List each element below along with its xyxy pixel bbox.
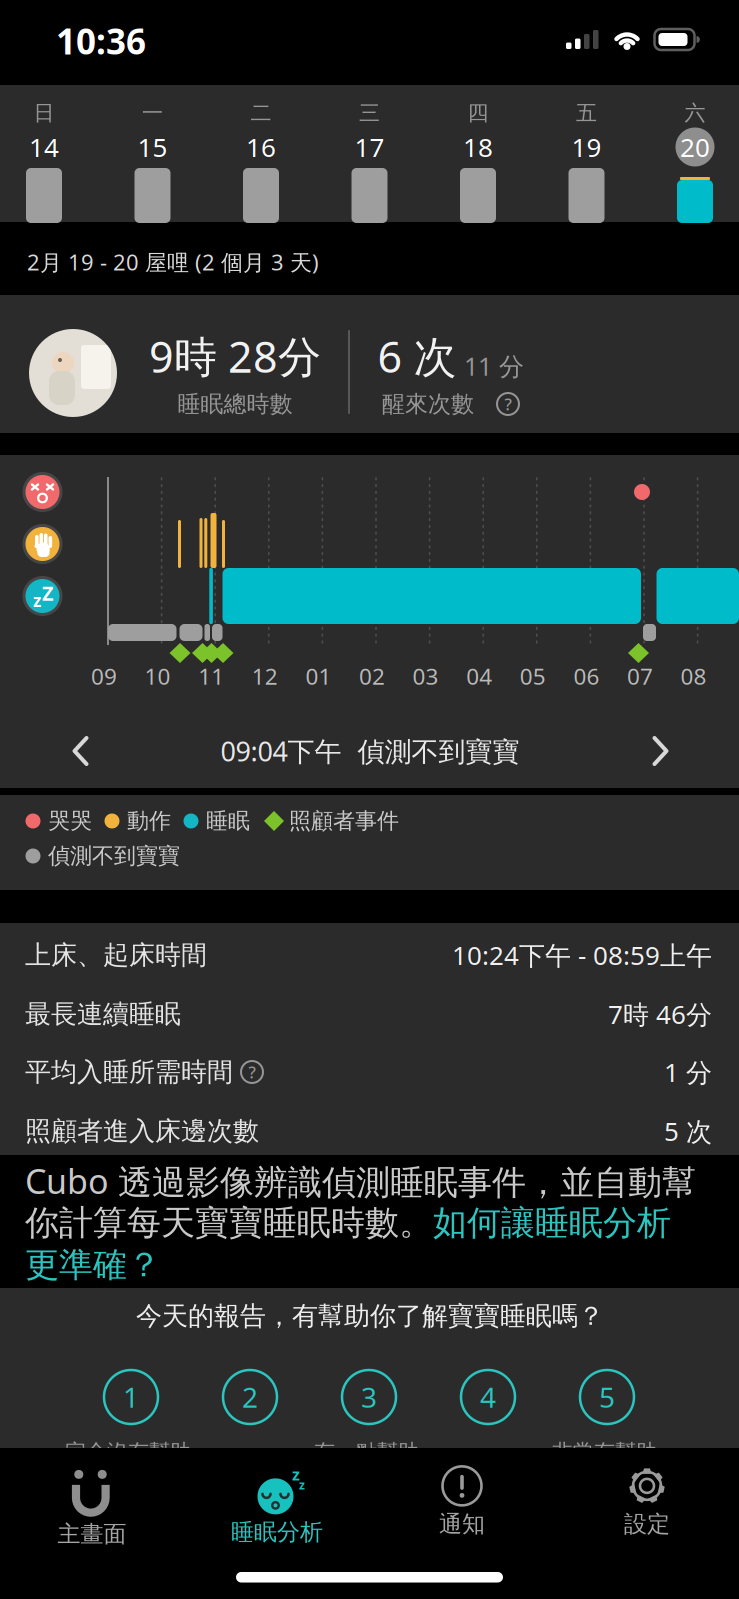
staticText: 二 (250, 100, 271, 126)
button[interactable]: 5 (572, 1362, 642, 1432)
staticText: z (299, 1477, 305, 1493)
staticText: Cubo 透過影像辨識偵測睡眠事件，並自動幫 (25, 1158, 696, 1204)
staticText: 照顧者進入床邊次數 (25, 1115, 259, 1147)
button[interactable]: 四 (424, 85, 532, 222)
button[interactable]: 上一個事件 (56, 721, 116, 781)
staticText: 上床、起床時間 (25, 939, 207, 971)
staticText: 四 (467, 100, 488, 126)
staticText: 14 (29, 130, 59, 164)
button[interactable]: 日 (0, 85, 98, 222)
button[interactable]: 更準確？ (25, 1244, 161, 1286)
staticText: 09:04下午 偵測不到寶寶 (220, 733, 519, 769)
staticText: 哭哭 (48, 807, 92, 834)
staticText: 9時 28分 (149, 327, 321, 384)
button[interactable]: 平均入睡所需時間說明 (222, 1042, 282, 1102)
staticText: 15 (137, 130, 167, 164)
staticText: 5 (599, 1378, 615, 1416)
staticText: 非常有幫助 (552, 1439, 657, 1465)
staticText: ? (248, 1061, 255, 1083)
staticText: 睡眠分析 (231, 1518, 323, 1546)
button[interactable]: 3 (334, 1362, 404, 1432)
staticText: 日 (33, 100, 54, 126)
staticText: 一 (142, 100, 163, 126)
staticText: 2 (242, 1378, 258, 1416)
staticText: 10:24下午 - 08:59上午 (452, 938, 712, 972)
button[interactable]: 二 (207, 85, 315, 222)
staticText: 今天的報告，有幫助你了解寶寶睡眠嗎？ (136, 1300, 604, 1332)
staticText: 18 (463, 130, 493, 164)
staticText: 睡眠總時數 (177, 390, 292, 418)
staticText: 主畫面 (57, 1520, 126, 1548)
button[interactable]: z (202, 1450, 352, 1554)
staticText: 如何讓睡眠分析 (433, 1202, 671, 1244)
button[interactable]: 主畫面 (17, 1450, 167, 1554)
staticText: 16 (246, 130, 276, 164)
staticText: 02 (359, 661, 385, 691)
staticText: 最長連續睡眠 (25, 998, 181, 1030)
staticText: 你計算每天寶寶睡眠時數。 (25, 1202, 433, 1244)
staticText: 1 分 (664, 1055, 712, 1089)
staticText: 六 (684, 100, 705, 126)
staticText: 17 (354, 130, 384, 164)
staticText: 10:36 (56, 18, 146, 64)
staticText: 09 (91, 661, 117, 691)
staticText: 6 次 (377, 327, 456, 384)
button[interactable]: 如何讓睡眠分析 (433, 1202, 671, 1244)
staticText: 05 (520, 661, 546, 691)
button[interactable]: 2 (215, 1362, 285, 1432)
staticText: 03 (413, 661, 439, 691)
staticText: 10 (145, 661, 171, 691)
staticText: 04 (466, 661, 492, 691)
staticText: 06 (573, 661, 599, 691)
staticText: 更準確？ (25, 1244, 161, 1286)
staticText: 4 (480, 1378, 496, 1416)
staticText: 通知 (439, 1510, 485, 1538)
staticText: 01 (305, 661, 331, 691)
button[interactable]: 醒來次數說明 (478, 374, 538, 434)
staticText: 19 (571, 130, 601, 164)
staticText: 07 (627, 661, 653, 691)
staticText: 有一點幫助 (314, 1439, 419, 1465)
staticText: 平均入睡所需時間 (25, 1056, 233, 1088)
button[interactable]: 設定 (572, 1450, 722, 1554)
staticText: 1 (123, 1378, 139, 1416)
staticText: 睡眠 (206, 807, 250, 834)
staticText: 7時 46分 (608, 997, 712, 1031)
staticText: 2月 19 - 20 屋哩 (2 個月 3 天) (27, 247, 319, 277)
staticText: 設定 (624, 1510, 670, 1538)
button[interactable]: 1 (96, 1362, 166, 1432)
staticText: 照顧者事件 (289, 807, 399, 834)
staticText: 08 (681, 661, 707, 691)
staticText: 20 (680, 130, 710, 164)
staticText: 完全沒有幫助 (65, 1439, 191, 1465)
button[interactable]: 下一個事件 (625, 721, 685, 781)
button[interactable]: 通知 (387, 1450, 537, 1554)
staticText: 11 (198, 661, 224, 691)
staticText: 醒來次數 (382, 390, 474, 418)
staticText: 3 (361, 1378, 377, 1416)
button[interactable]: 五 (532, 85, 640, 222)
staticText: ? (504, 393, 511, 415)
staticText: 動作 (127, 807, 171, 834)
staticText: z (33, 589, 41, 612)
button[interactable]: 六 (641, 85, 739, 222)
staticText: 12 (252, 661, 278, 691)
staticText: 11 分 (464, 349, 524, 383)
staticText: 五 (576, 100, 597, 126)
staticText: 5 次 (664, 1114, 712, 1148)
button[interactable]: 一 (98, 85, 206, 222)
staticText: 三 (359, 100, 380, 126)
button[interactable]: 4 (453, 1362, 523, 1432)
staticText: Z (42, 580, 54, 606)
staticText: z (292, 1464, 300, 1485)
staticText: 偵測不到寶寶 (48, 842, 180, 869)
button[interactable]: 三 (315, 85, 423, 222)
